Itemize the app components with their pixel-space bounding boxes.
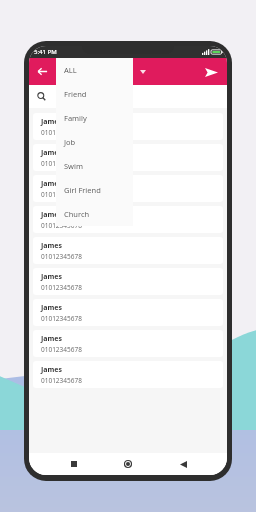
staticText: James <box>41 303 63 313</box>
button[interactable]: Girl Friend <box>56 178 133 202</box>
button[interactable]: James <box>33 299 223 326</box>
button[interactable]: James <box>33 237 223 264</box>
staticText: James <box>41 241 63 251</box>
button[interactable]: James <box>33 268 223 295</box>
staticText: 01012345678 <box>41 128 82 137</box>
staticText: 01012345678 <box>41 283 82 292</box>
staticText: Church <box>64 209 90 219</box>
staticText: Job <box>64 137 76 147</box>
staticText: James <box>41 272 63 282</box>
button[interactable]: James <box>33 206 223 233</box>
button[interactable]: Send <box>200 61 222 83</box>
button[interactable]: Back <box>29 58 56 85</box>
button[interactable]: Swim <box>56 154 133 178</box>
button[interactable]: ALL <box>56 58 133 82</box>
staticText: James <box>41 334 63 344</box>
button[interactable]: Recent apps <box>64 454 84 474</box>
staticText: 5:41 PM <box>34 48 57 56</box>
button[interactable]: James <box>33 144 223 171</box>
staticText: James <box>41 365 63 375</box>
button[interactable]: James <box>33 330 223 357</box>
staticText: James <box>41 117 63 127</box>
staticText: 01012345678 <box>41 314 82 323</box>
button[interactable]: Family <box>56 106 133 130</box>
staticText: James <box>41 179 63 189</box>
button[interactable]: James <box>33 361 223 388</box>
staticText: James <box>41 210 63 220</box>
button[interactable]: Friend <box>56 82 133 106</box>
button[interactable]: Back <box>173 454 193 474</box>
button[interactable]: James <box>33 175 223 202</box>
staticText: 01012345678 <box>41 221 82 230</box>
staticText: Friend <box>64 89 87 99</box>
staticText: Girl Friend <box>64 185 101 195</box>
staticText: ALL <box>64 65 77 75</box>
button[interactable]: James <box>33 113 223 140</box>
staticText: 01012345678 <box>41 345 82 354</box>
staticText: Swim <box>64 161 83 171</box>
button[interactable]: Search <box>29 85 227 108</box>
staticText: 01012345678 <box>41 252 82 261</box>
staticText: 01012345678 <box>41 190 82 199</box>
button[interactable]: Select group <box>132 61 154 83</box>
staticText: James <box>41 148 63 158</box>
staticText: Family <box>64 113 87 123</box>
staticText: 01012345678 <box>41 159 82 168</box>
staticText: 01012345678 <box>41 376 82 385</box>
button[interactable]: Church <box>56 202 133 226</box>
button[interactable]: Home <box>118 454 138 474</box>
button[interactable]: Job <box>56 130 133 154</box>
